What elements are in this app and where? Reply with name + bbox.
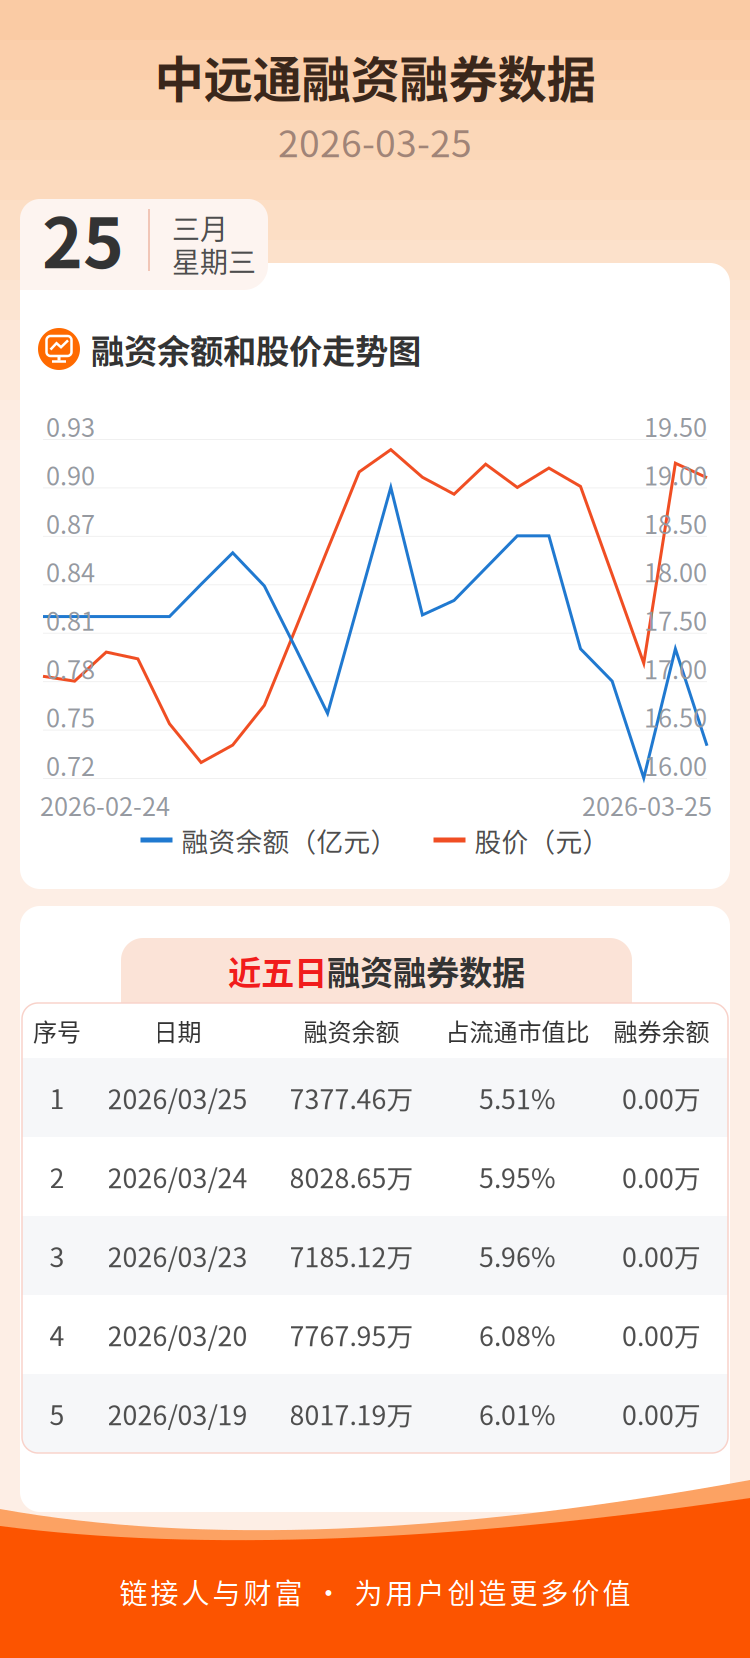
staticText: 6.01%: [479, 1394, 556, 1433]
staticText: 7767.95万: [289, 1315, 413, 1354]
staticText: 17.50: [644, 601, 707, 638]
staticText: 三月: [172, 207, 228, 248]
staticText: 3: [49, 1236, 64, 1275]
staticText: 0.72: [46, 747, 95, 783]
staticText: 2026-03-25: [582, 787, 712, 823]
staticText: 7377.46万: [289, 1078, 413, 1117]
staticText: 2026/03/24: [107, 1157, 247, 1196]
staticText: 6.08%: [479, 1315, 556, 1354]
staticText: 0.81: [46, 601, 95, 638]
staticText: 0.93: [46, 408, 95, 444]
staticText: 0.00万: [622, 1078, 701, 1117]
staticText: 2026/03/19: [107, 1394, 247, 1433]
staticText: 0.00万: [622, 1315, 701, 1354]
staticText: 8028.65万: [289, 1157, 413, 1196]
staticText: 中远通融资融券数据: [154, 40, 595, 112]
staticText: 18.00: [644, 553, 707, 590]
staticText: 0.87: [46, 504, 95, 541]
staticText: 5.96%: [479, 1236, 556, 1275]
staticText: 1: [49, 1078, 64, 1117]
staticText: 8017.19万: [289, 1394, 413, 1433]
staticText: 链接人与财富 · 为用户创造更多价值: [119, 1571, 630, 1612]
staticText: 7185.12万: [289, 1236, 413, 1275]
staticText: 序号: [33, 1013, 81, 1048]
staticText: 18.50: [644, 504, 707, 541]
staticText: 融资余额（亿元）: [181, 821, 397, 859]
staticText: 近五日: [228, 946, 327, 995]
staticText: 2: [49, 1157, 64, 1196]
staticText: 5.51%: [479, 1078, 556, 1117]
staticText: 日期: [153, 1013, 201, 1048]
staticText: 2026-02-24: [40, 787, 170, 823]
staticText: 星期三: [172, 240, 256, 281]
staticText: 2026/03/23: [107, 1236, 247, 1275]
staticText: 2026/03/25: [107, 1078, 247, 1117]
staticText: 0.84: [46, 553, 95, 590]
staticText: 2026-03-25: [278, 114, 472, 168]
staticText: 5: [49, 1394, 64, 1433]
staticText: 5.95%: [479, 1157, 556, 1196]
staticText: 25: [42, 188, 124, 288]
staticText: 19.50: [644, 408, 707, 444]
staticText: 融券余额: [613, 1013, 709, 1048]
staticText: 占流通市值比: [445, 1013, 589, 1048]
staticText: 16.00: [644, 747, 707, 783]
staticText: 0.00万: [622, 1157, 701, 1196]
staticText: 4: [49, 1315, 64, 1354]
staticText: 2026/03/20: [107, 1315, 247, 1354]
staticText: 0.75: [46, 698, 95, 735]
staticText: 0.90: [46, 456, 95, 493]
staticText: 股价（元）: [474, 821, 609, 859]
staticText: 0.00万: [622, 1236, 701, 1275]
staticText: 16.50: [644, 698, 707, 735]
staticText: 融资余额和股价走势图: [91, 325, 421, 373]
staticText: 融资余额: [303, 1013, 399, 1048]
staticText: 19.00: [644, 456, 707, 493]
staticText: 17.00: [644, 650, 707, 686]
staticText: 融资融券数据: [327, 946, 525, 995]
staticText: 0.78: [46, 650, 95, 686]
staticText: 0.00万: [622, 1394, 701, 1433]
